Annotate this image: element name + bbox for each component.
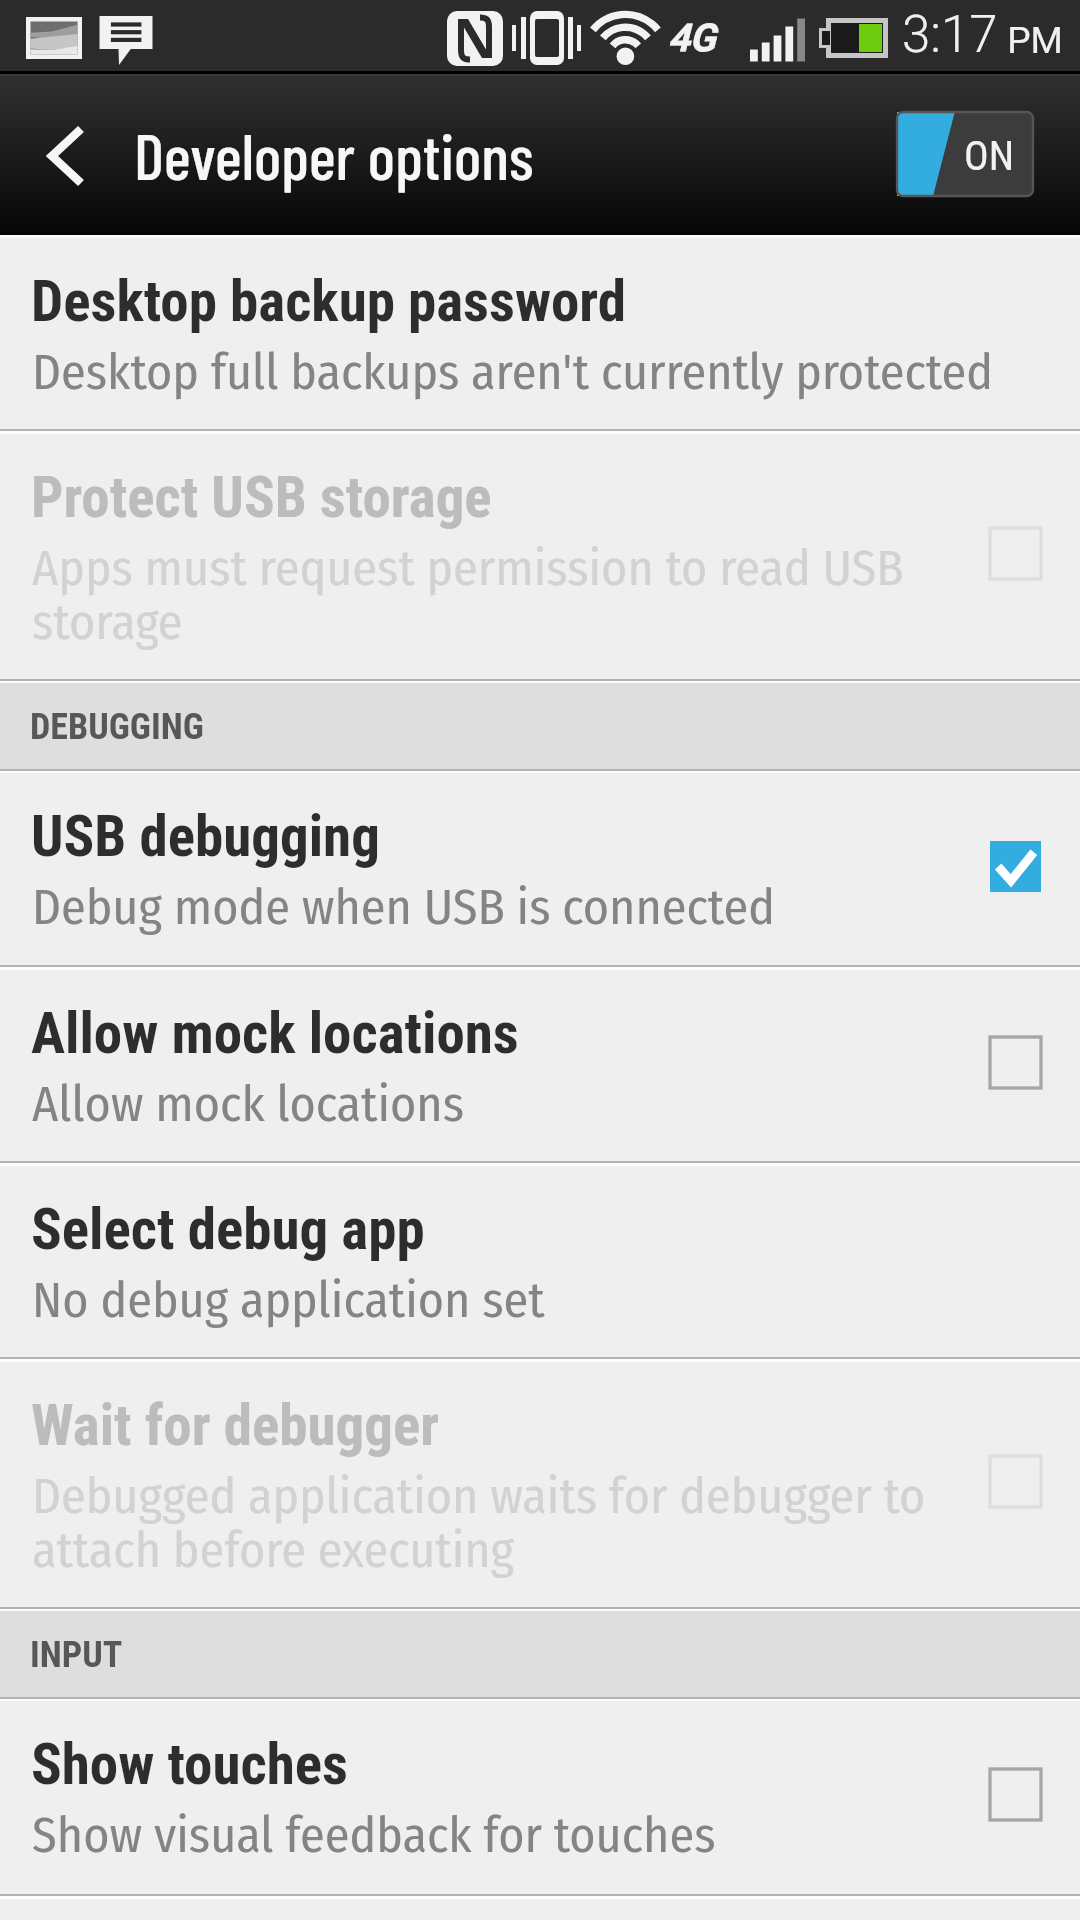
- staticText: Allow mock locations: [31, 1000, 519, 1067]
- button[interactable]: Show touches: [0, 1701, 1080, 1894]
- staticText: Apps must request permission to read USB…: [32, 538, 1022, 652]
- staticText: Debug mode when USB is connected: [32, 877, 1022, 937]
- staticText: No debug application set: [32, 1270, 1022, 1330]
- staticText: Debugged application waits for debugger …: [32, 1466, 1022, 1580]
- staticText: Protect USB storage: [31, 464, 492, 531]
- button[interactable]: Protect USB storage: [0, 434, 1080, 679]
- staticText: DEBUGGING: [30, 706, 204, 748]
- button[interactable]: USB debugging: [0, 773, 1080, 965]
- staticText: Show touches: [31, 1731, 348, 1798]
- staticText: Select debug app: [31, 1196, 425, 1263]
- button[interactable]: Wait for debugger: [0, 1362, 1080, 1607]
- staticText: ON: [964, 132, 1015, 180]
- button[interactable]: Desktop backup password: [0, 238, 1080, 429]
- button[interactable]: Select debug app: [0, 1166, 1080, 1357]
- button[interactable]: Back: [0, 76, 140, 235]
- staticText: USB debugging: [31, 803, 380, 870]
- staticText: Show visual feedback for touches: [32, 1805, 1022, 1865]
- staticText: Desktop full backups aren't currently pr…: [32, 342, 1022, 402]
- staticText: Desktop backup password: [31, 268, 626, 335]
- staticText: INPUT: [30, 1634, 123, 1676]
- staticText: PM: [998, 19, 1063, 62]
- staticText: Wait for debugger: [31, 1392, 440, 1459]
- staticText: Developer options: [134, 116, 534, 193]
- staticText: Allow mock locations: [32, 1074, 1022, 1134]
- button[interactable]: Allow mock locations: [0, 970, 1080, 1161]
- staticText: 3:17: [902, 5, 998, 65]
- button[interactable]: Developer options on: [897, 112, 1033, 196]
- staticText: 4G: [668, 16, 716, 61]
